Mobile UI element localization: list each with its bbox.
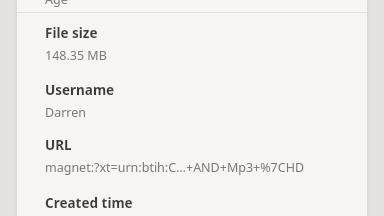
button[interactable]: URL (17, 136, 367, 178)
button[interactable]: Username (17, 81, 367, 123)
button[interactable]: File size (17, 24, 367, 66)
staticText: Darren (45, 104, 86, 121)
staticText: Age (45, 0, 68, 8)
staticText: magnet:?xt=urn:btih:C…+AND+Mp3+%7CHD (45, 159, 305, 176)
staticText: 148.35 MB (45, 47, 107, 64)
button[interactable]: Created time (17, 194, 367, 216)
staticText: URL (45, 136, 72, 154)
staticText: Username (45, 81, 115, 99)
staticText: Created time (45, 194, 133, 212)
button[interactable]: Age (45, 0, 68, 8)
staticText: File size (45, 24, 98, 42)
